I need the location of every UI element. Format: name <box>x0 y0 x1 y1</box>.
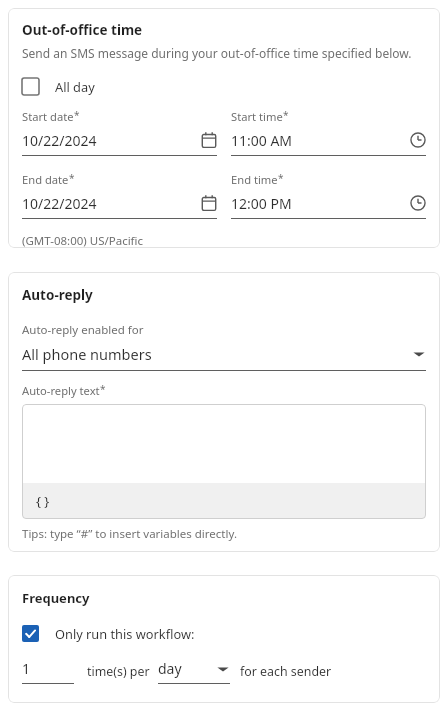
staticText: (GMT-08:00) US/Pacific <box>22 233 144 248</box>
staticText: for each sender <box>240 663 332 680</box>
staticText: * <box>100 382 106 396</box>
staticText: day <box>158 659 182 678</box>
staticText: * <box>74 108 80 122</box>
button[interactable]: Expand dropdown <box>412 349 426 359</box>
button[interactable]: 1 <box>22 658 74 684</box>
button[interactable]: Expand dropdown <box>216 664 230 674</box>
staticText: Only run this workflow: <box>55 625 195 642</box>
staticText: End date <box>22 172 69 187</box>
staticText: All day <box>55 78 95 95</box>
staticText: Auto-reply <box>22 286 93 304</box>
staticText: Auto-reply text <box>22 383 100 398</box>
button[interactable]: All day <box>22 73 95 99</box>
staticText: { } <box>36 492 50 510</box>
button[interactable]: All day <box>22 78 39 95</box>
staticText: Start date <box>22 109 74 124</box>
button[interactable]: All phone numbers <box>22 343 426 365</box>
staticText: 1 <box>22 659 31 678</box>
button[interactable]: day <box>158 658 230 684</box>
button[interactable]: Only run this workflow <box>22 625 39 642</box>
button[interactable]: End date <box>22 172 217 219</box>
staticText: 12:00 PM <box>231 194 292 213</box>
staticText: * <box>69 171 75 185</box>
button[interactable]: Open calendar picker <box>201 195 217 211</box>
staticText: Tips: type “#” to insert variables direc… <box>22 526 237 542</box>
button[interactable]: { } <box>36 492 50 510</box>
button[interactable]: Start time <box>231 109 426 156</box>
staticText: End time <box>231 172 278 187</box>
staticText: Auto-reply enabled for <box>22 322 144 338</box>
button[interactable]: Open calendar picker <box>201 132 217 148</box>
staticText: time(s) per <box>87 663 150 680</box>
staticText: 11:00 AM <box>231 131 293 150</box>
staticText: All phone numbers <box>22 344 152 364</box>
button[interactable]: End time <box>231 172 426 219</box>
button[interactable]: Start date <box>22 109 217 156</box>
button[interactable]: Open time picker <box>410 195 426 211</box>
staticText: * <box>283 108 289 122</box>
staticText: Frequency <box>22 589 90 607</box>
staticText: Out-of-office time <box>22 21 143 39</box>
button[interactable]: Open time picker <box>410 132 426 148</box>
staticText: 10/22/2024 <box>22 131 97 150</box>
staticText: * <box>278 171 284 185</box>
button[interactable]: { } <box>22 404 426 519</box>
button[interactable]: Only run this workflow <box>22 621 195 645</box>
staticText: Send an SMS message during your out-of-o… <box>22 45 412 61</box>
staticText: 10/22/2024 <box>22 194 97 213</box>
staticText: Start time <box>231 109 283 124</box>
